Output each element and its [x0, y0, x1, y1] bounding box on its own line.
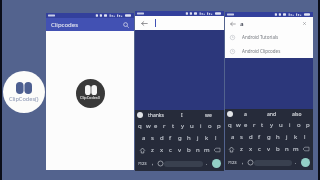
button[interactable]: a — [139, 132, 148, 144]
button[interactable]: s — [237, 131, 246, 143]
staticText: m — [293, 145, 299, 153]
button[interactable]: v — [175, 144, 184, 156]
button[interactable]: Backspace — [300, 143, 312, 155]
staticText: l — [304, 133, 306, 141]
button[interactable]: Android Tutorials — [230, 30, 308, 44]
staticText: g — [178, 134, 182, 142]
button[interactable]: w — [234, 119, 242, 131]
button[interactable]: and — [258, 109, 284, 119]
button[interactable]: I — [169, 110, 195, 120]
button[interactable]: h — [184, 132, 193, 144]
staticText: p — [306, 121, 310, 129]
button[interactable]: z — [237, 143, 246, 155]
button[interactable]: e — [242, 119, 250, 131]
button[interactable]: l — [211, 132, 220, 144]
button[interactable]: Search — [212, 159, 221, 168]
button[interactable]: g — [175, 132, 184, 144]
button[interactable]: d — [157, 132, 166, 144]
button[interactable]: . — [292, 155, 299, 170]
button[interactable]: z — [148, 144, 157, 156]
button[interactable]: Shift — [226, 143, 237, 155]
button[interactable]: q — [136, 120, 144, 132]
button[interactable]: o — [205, 120, 214, 132]
button[interactable]: x — [246, 143, 255, 155]
button[interactable]: s — [148, 132, 157, 144]
button[interactable]: m — [202, 144, 211, 156]
staticText: ClipCodes() — [9, 95, 39, 103]
button[interactable]: we — [195, 110, 221, 120]
button[interactable]: Back — [228, 19, 237, 28]
button[interactable]: k — [202, 132, 211, 144]
button[interactable]: i — [196, 120, 205, 132]
button[interactable]: also — [284, 109, 310, 119]
button[interactable]: n — [193, 144, 202, 156]
button[interactable]: e — [152, 120, 160, 132]
staticText: . — [295, 159, 297, 166]
button[interactable]: u — [187, 120, 196, 132]
button[interactable]: g — [264, 131, 273, 143]
button[interactable]: n — [282, 143, 291, 155]
button[interactable]: p — [303, 119, 312, 131]
button[interactable]: a — [229, 131, 237, 143]
button[interactable]: k — [291, 131, 300, 143]
button[interactable]: Search — [121, 20, 130, 29]
button[interactable]: f — [255, 131, 264, 143]
button[interactable]: b — [184, 144, 193, 156]
button[interactable]: h — [273, 131, 282, 143]
button[interactable]: c — [166, 144, 175, 156]
button[interactable]: Emoji — [156, 156, 164, 171]
button[interactable]: j — [193, 132, 202, 144]
button[interactable]: Clear — [300, 19, 309, 28]
button[interactable]: f — [166, 132, 175, 144]
staticText: ClipCodes() — [80, 95, 100, 100]
button[interactable]: Android Clipcodes — [230, 44, 308, 58]
button[interactable]: l — [300, 131, 309, 143]
button[interactable]: y — [267, 119, 276, 131]
staticText: a — [240, 20, 244, 28]
button[interactable]: i — [285, 119, 294, 131]
staticText: s — [151, 134, 154, 142]
button[interactable]: m — [291, 143, 300, 155]
staticText: c — [258, 145, 261, 153]
staticText: n — [196, 146, 200, 154]
staticText: Android Clipcodes — [242, 48, 281, 54]
button[interactable]: ?123 — [136, 156, 149, 171]
button[interactable]: j — [282, 131, 291, 143]
button[interactable]: r — [160, 120, 169, 132]
button[interactable]: u — [276, 119, 285, 131]
button[interactable]: c — [255, 143, 264, 155]
button[interactable]: Emoji — [246, 155, 254, 170]
staticText: z — [151, 146, 154, 154]
button[interactable]: ClipCodes logo — [3, 71, 45, 113]
button[interactable]: t — [258, 119, 267, 131]
button[interactable]: . — [203, 156, 210, 171]
button[interactable]: a — [233, 109, 258, 119]
button[interactable]: ?123 — [226, 155, 239, 170]
button[interactable]: x — [157, 144, 166, 156]
button[interactable]: Search — [301, 158, 310, 167]
button[interactable]: w — [144, 120, 152, 132]
button[interactable]: thanks — [143, 110, 169, 120]
button[interactable]: , — [149, 156, 156, 171]
button[interactable]: y — [178, 120, 187, 132]
button[interactable]: p — [214, 120, 223, 132]
button[interactable]: t — [169, 120, 178, 132]
button[interactable]: Back — [139, 18, 149, 28]
staticText: t — [261, 121, 264, 129]
button[interactable]: o — [294, 119, 303, 131]
button[interactable]: Shift — [136, 144, 148, 156]
button[interactable]: q — [226, 119, 234, 131]
button[interactable]: v — [264, 143, 273, 155]
button[interactable]: Backspace — [211, 144, 223, 156]
staticText: r — [163, 122, 166, 130]
staticText: f — [258, 133, 261, 141]
staticText: a — [244, 111, 247, 118]
button[interactable]: b — [273, 143, 282, 155]
button[interactable]: , — [239, 155, 246, 170]
button[interactable]: r — [250, 119, 258, 131]
button[interactable]: d — [246, 131, 255, 143]
staticText: I — [181, 112, 183, 119]
staticText: we — [205, 112, 212, 119]
